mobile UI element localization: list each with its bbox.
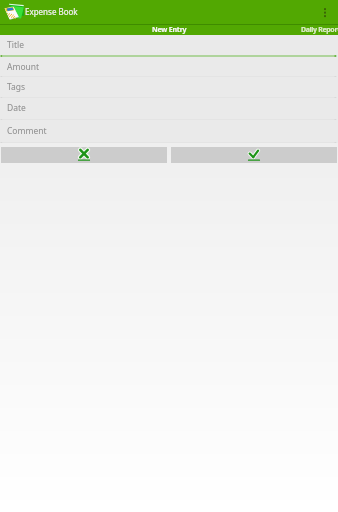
button[interactable]: Daily Report — [301, 25, 338, 35]
staticText: Comment — [7, 125, 47, 137]
button[interactable]: Tags — [0, 77, 338, 98]
button[interactable]: Title — [0, 35, 338, 57]
button[interactable]: Comment — [0, 120, 338, 143]
staticText: Expense Book — [25, 6, 78, 17]
button[interactable]: Save — [171, 147, 337, 163]
staticText: Title — [7, 39, 24, 51]
button[interactable]: More options — [317, 0, 332, 24]
button[interactable]: New Entry — [152, 25, 187, 35]
button[interactable]: Amount — [0, 57, 338, 77]
staticText: Tags — [7, 81, 26, 93]
staticText: Date — [7, 102, 26, 114]
button[interactable]: Date — [0, 98, 338, 120]
button[interactable]: Cancel — [1, 147, 167, 163]
staticText: Amount — [7, 61, 40, 73]
